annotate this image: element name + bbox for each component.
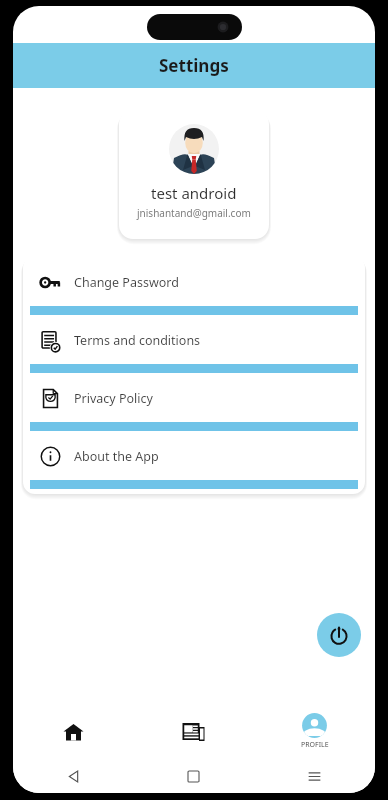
- button[interactable]: Home: [13, 703, 133, 759]
- button[interactable]: Privacy Policy: [23, 375, 365, 433]
- staticText: Terms and conditions: [74, 332, 201, 349]
- staticText: Privacy Policy: [74, 390, 153, 407]
- staticText: PROFILE: [301, 740, 329, 750]
- button[interactable]: Change Password: [23, 259, 365, 317]
- staticText: Change Password: [74, 274, 179, 291]
- staticText: Settings: [159, 54, 229, 77]
- staticText: test android: [151, 183, 237, 203]
- staticText: jnishantand@gmail.com: [137, 206, 251, 220]
- button[interactable]: PROFILE: [254, 703, 375, 759]
- button[interactable]: Terms and conditions: [23, 317, 365, 375]
- button[interactable]: test android: [119, 110, 269, 239]
- button[interactable]: Logout: [317, 613, 361, 657]
- button[interactable]: About the App: [23, 433, 365, 491]
- staticText: About the App: [74, 448, 159, 465]
- button[interactable]: News: [133, 703, 254, 759]
